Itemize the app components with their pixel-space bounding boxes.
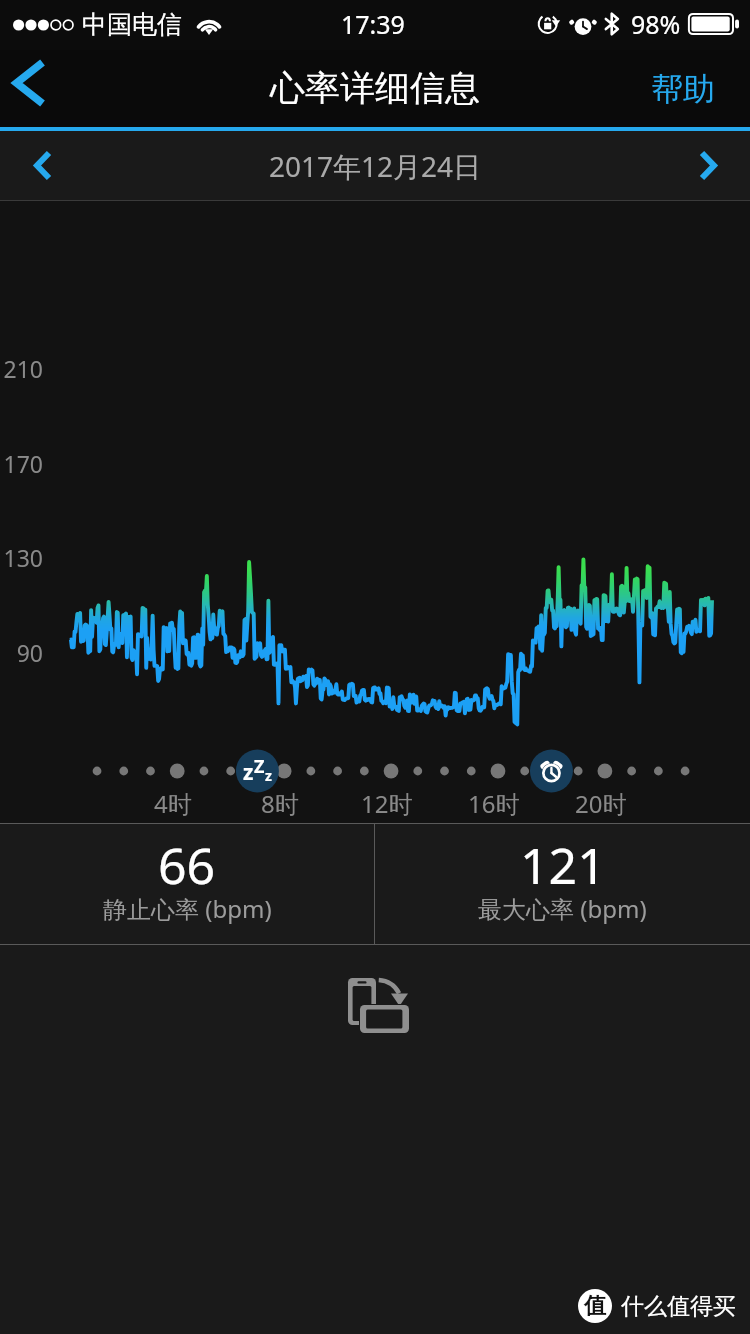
button[interactable]: 66 — [0, 824, 374, 944]
staticText: 12时 — [361, 787, 413, 819]
staticText: 4时 — [154, 787, 192, 819]
button[interactable]: Next day — [666, 131, 750, 200]
staticText: 2017年12月24日 — [269, 147, 482, 185]
staticText: 静止心率 (bpm) — [103, 892, 272, 925]
button[interactable]: Sleep period — [236, 758, 279, 784]
staticText: 值 — [584, 1292, 606, 1320]
button[interactable]: Previous day — [0, 131, 84, 200]
staticText: 16时 — [468, 787, 520, 819]
button[interactable]: 帮助 — [629, 50, 750, 127]
staticText: 170 — [3, 448, 43, 478]
staticText: 210 — [3, 353, 43, 383]
staticText: 最大心率 (bpm) — [478, 892, 647, 925]
staticText: 130 — [3, 542, 43, 572]
button[interactable]: Rotate screen — [348, 978, 409, 1033]
button[interactable]: Back — [0, 50, 62, 127]
staticText: z — [265, 766, 272, 785]
staticText: 17:39 — [341, 7, 405, 41]
staticText: 66 — [158, 831, 216, 899]
staticText: z — [243, 758, 254, 784]
staticText: 8时 — [261, 787, 299, 819]
staticText: 什么值得买 — [621, 1292, 736, 1321]
staticText: 121 — [520, 831, 606, 899]
staticText: Z — [254, 754, 265, 779]
staticText: 中国电信 — [82, 9, 182, 40]
staticText: 20时 — [575, 787, 627, 819]
staticText: 心率详细信息 — [270, 66, 480, 110]
staticText: 98% — [631, 7, 681, 41]
button[interactable]: 121 — [375, 824, 750, 944]
staticText: 90 — [16, 637, 43, 667]
staticText: 帮助 — [651, 69, 715, 109]
